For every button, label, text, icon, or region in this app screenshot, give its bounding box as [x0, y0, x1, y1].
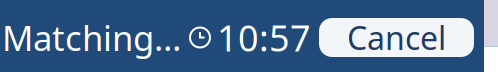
button[interactable]: Cancel — [319, 18, 474, 57]
staticText: Cancel — [347, 16, 446, 59]
staticText: Matching… — [2, 14, 181, 60]
staticText: 10:57 — [217, 14, 311, 61]
